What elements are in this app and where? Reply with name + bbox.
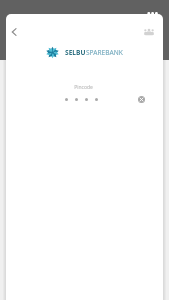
button[interactable]: Pincode field [65, 98, 98, 101]
staticText: Pincode [6, 84, 162, 91]
staticText: SELBU [65, 48, 86, 57]
button[interactable]: Clear [138, 96, 145, 103]
button[interactable]: Back [9, 24, 27, 42]
button[interactable]: Users [141, 24, 157, 40]
staticText: SPAREBANK [86, 48, 123, 57]
